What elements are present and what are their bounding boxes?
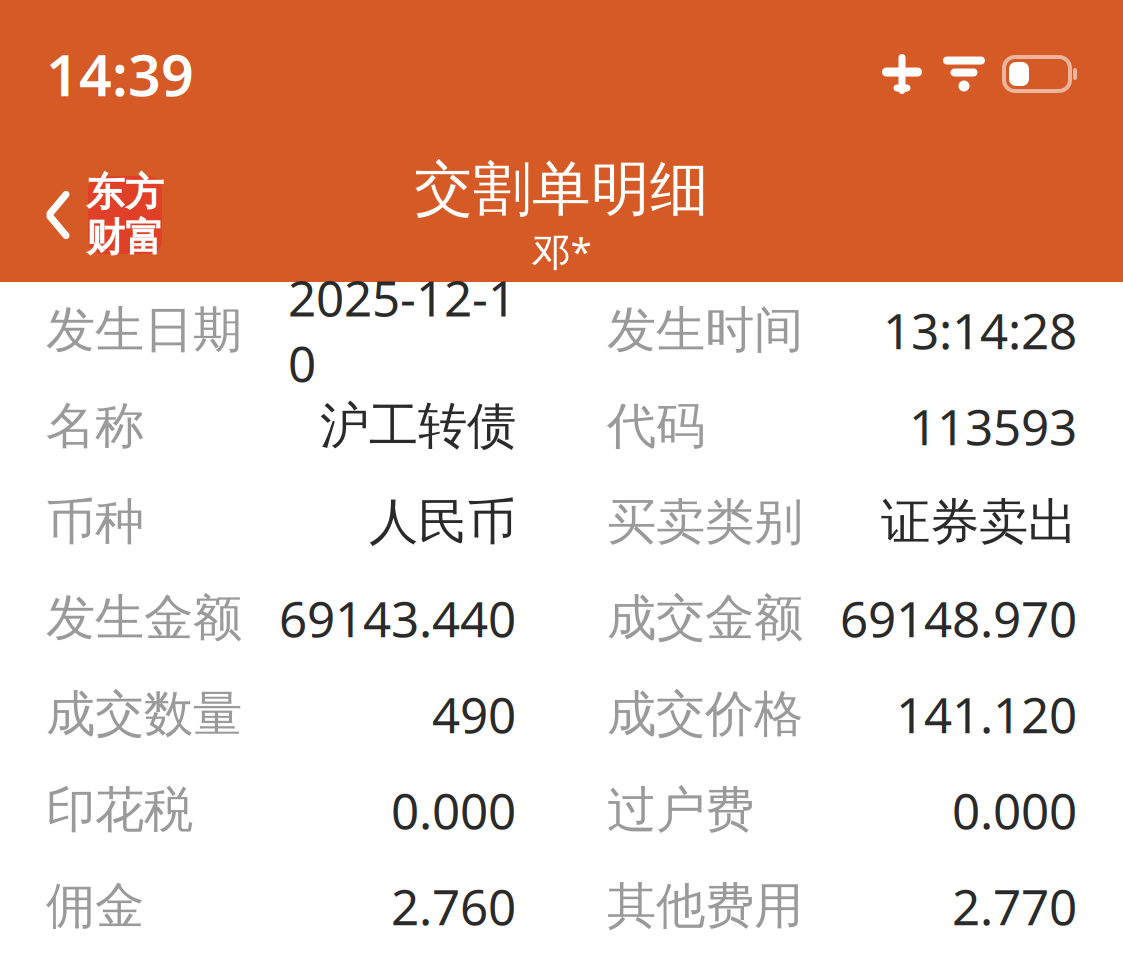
staticText: 其他费用 <box>607 876 803 936</box>
staticText: 113593 <box>909 393 1077 459</box>
button[interactable]: 返回 <box>0 170 172 260</box>
staticText: 2025-12-10 <box>288 264 516 395</box>
staticText: 发生金额 <box>46 588 242 648</box>
staticText: 2.770 <box>952 873 1077 939</box>
staticText: 成交金额 <box>607 588 803 648</box>
staticText: 69143.440 <box>279 585 516 651</box>
staticText: 69148.970 <box>840 585 1077 651</box>
staticText: 490 <box>432 681 516 747</box>
staticText: 买卖类别 <box>607 492 803 552</box>
staticText: 人民币 <box>369 492 516 552</box>
staticText: 东 <box>86 168 125 216</box>
staticText: 2.760 <box>391 873 516 939</box>
staticText: 0.000 <box>952 777 1077 843</box>
staticText: 发生日期 <box>46 300 242 360</box>
staticText: 代码 <box>607 396 705 456</box>
staticText: 证券卖出 <box>881 492 1077 552</box>
staticText: 成交数量 <box>46 684 242 744</box>
staticText: 佣金 <box>46 876 144 936</box>
staticText: 名称 <box>46 396 144 456</box>
staticText: 方 <box>125 168 164 216</box>
staticText: 14:39 <box>46 36 194 112</box>
staticText: 币种 <box>46 492 144 552</box>
staticText: 13:14:28 <box>883 297 1077 363</box>
staticText: 富 <box>125 214 164 261</box>
staticText: 沪工转债 <box>320 396 516 456</box>
staticText: 交割单明细 <box>414 153 709 225</box>
staticText: 邓* <box>531 225 591 277</box>
staticText: 发生时间 <box>607 300 803 360</box>
staticText: 141.120 <box>896 681 1077 747</box>
staticText: 成交价格 <box>607 684 803 744</box>
staticText: 印花税 <box>46 780 193 840</box>
staticText: 财 <box>86 214 125 261</box>
staticText: 过户费 <box>607 780 754 840</box>
staticText: 0.000 <box>391 777 516 843</box>
